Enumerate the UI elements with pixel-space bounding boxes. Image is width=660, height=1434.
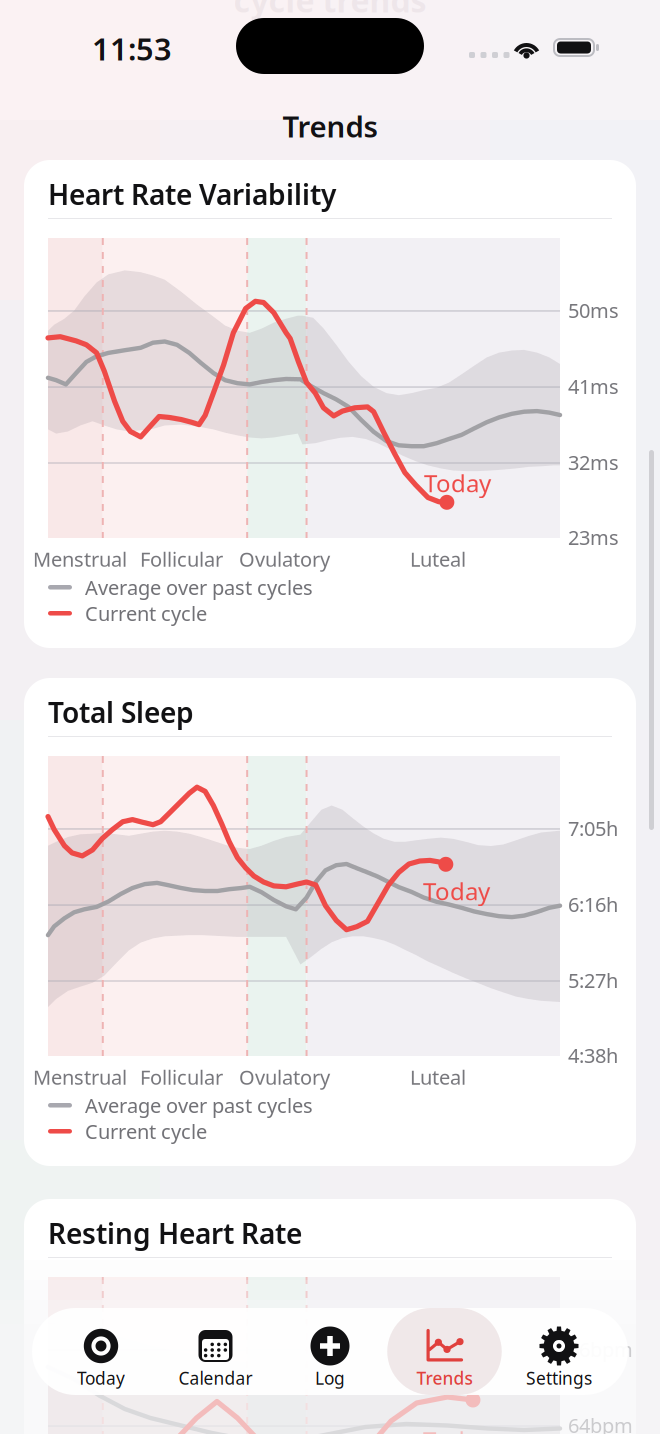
staticText: 41ms — [568, 373, 619, 400]
staticText: 66bpm — [568, 1336, 633, 1362]
staticText: Luteal — [410, 1064, 466, 1090]
staticText: Current cycle — [85, 600, 207, 627]
staticText: 7:05h — [568, 815, 618, 841]
button[interactable]: Calendar — [158, 1308, 273, 1395]
staticText: Menstrual — [33, 546, 127, 572]
staticText: Calendar — [178, 1366, 252, 1389]
staticText: Follicular — [140, 546, 223, 572]
button[interactable]: Today — [44, 1308, 158, 1395]
staticText: Follicular — [140, 1064, 223, 1090]
staticText: 11:53 — [92, 28, 172, 69]
staticText: Ovulatory — [239, 1064, 330, 1090]
button[interactable]: Trends — [387, 1308, 502, 1395]
staticText: 50ms — [568, 297, 619, 323]
staticText: 32ms — [568, 449, 619, 476]
staticText: 6:16h — [568, 891, 618, 918]
staticText: Heart Rate Variability — [48, 176, 336, 213]
staticText: 23ms — [568, 524, 619, 551]
staticText: 64bpm — [568, 1412, 633, 1434]
staticText: Today — [77, 1366, 125, 1389]
staticText: Log — [315, 1366, 345, 1389]
staticText: Total Sleep — [48, 694, 194, 731]
staticText: 5:27h — [568, 967, 618, 994]
staticText: Luteal — [410, 546, 466, 572]
staticText: Today — [423, 1424, 490, 1434]
staticText: Current cycle — [85, 1118, 207, 1145]
staticText: Trends — [416, 1366, 472, 1389]
staticText: cycle trends — [233, 0, 426, 21]
staticText: 4:38h — [568, 1042, 618, 1069]
staticText: Ovulatory — [239, 546, 330, 572]
button[interactable]: Settings — [502, 1308, 616, 1395]
staticText: Today — [424, 467, 491, 499]
staticText: Settings — [526, 1366, 592, 1389]
staticText: Menstrual — [33, 1064, 127, 1090]
staticText: Resting Heart Rate — [48, 1215, 302, 1252]
staticText: Today — [423, 875, 490, 907]
staticText: Trends — [282, 106, 377, 145]
staticText: Average over past cycles — [85, 1092, 313, 1119]
button[interactable]: Log — [273, 1308, 387, 1395]
staticText: Average over past cycles — [85, 574, 313, 601]
